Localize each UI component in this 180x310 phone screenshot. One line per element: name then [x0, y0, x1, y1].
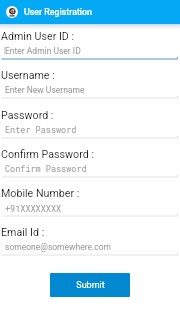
staticText: Submit [76, 280, 105, 291]
staticText: Admin User ID : [1, 30, 75, 43]
staticText: Username : [1, 69, 55, 82]
staticText: Confirm Password : [1, 148, 94, 161]
staticText: Enter New Username [5, 85, 85, 95]
button[interactable] [0, 105, 180, 137]
button[interactable]: Submit [50, 273, 130, 297]
button[interactable] [0, 144, 180, 176]
staticText: +91XXXXXXXX [5, 203, 62, 214]
button[interactable] [0, 222, 180, 254]
staticText: Mobile Number : [1, 187, 80, 200]
staticText: Confirm Password [5, 163, 87, 174]
staticText: someone@somewhere.com [5, 242, 111, 252]
button[interactable] [0, 26, 180, 58]
staticText: User Registration [24, 7, 92, 17]
staticText: Enter Password [5, 124, 77, 135]
staticText: Enter Admin User ID [5, 46, 81, 56]
button[interactable]: App icon [6, 6, 18, 18]
staticText: Email Id : [1, 226, 45, 239]
button[interactable] [0, 183, 180, 215]
button[interactable] [0, 65, 180, 97]
staticText: Password : [1, 109, 54, 122]
